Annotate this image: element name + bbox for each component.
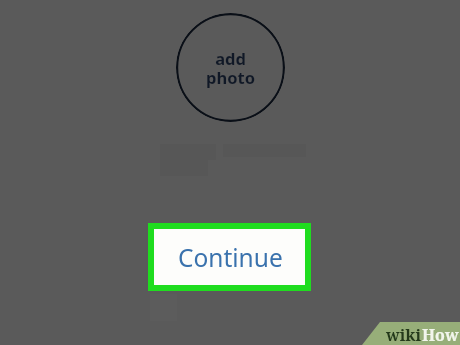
button[interactable]: Continue: [154, 229, 305, 285]
staticText: How: [422, 324, 459, 345]
staticText: Continue: [178, 241, 283, 274]
staticText: add photo: [206, 47, 255, 89]
button[interactable]: Add photo: [176, 13, 285, 122]
staticText: wiki: [386, 324, 422, 345]
